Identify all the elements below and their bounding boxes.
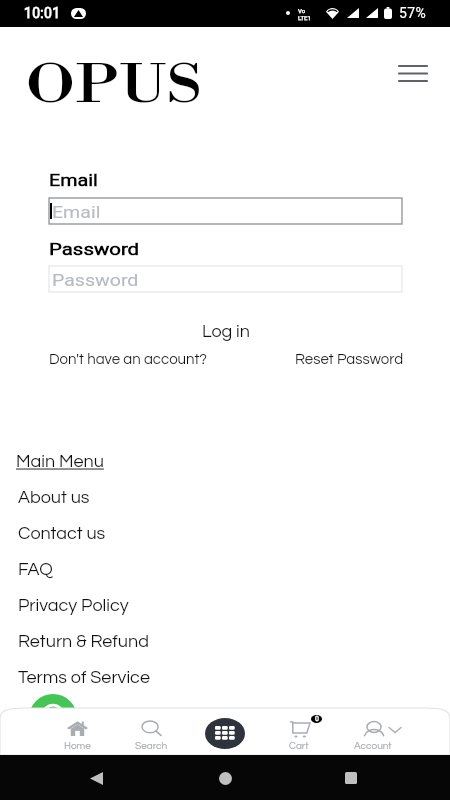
button[interactable]: Don't have an account?	[49, 352, 207, 367]
button[interactable]: Terms of Service	[18, 668, 150, 687]
button[interactable]: Search	[114, 708, 188, 755]
staticText: Reset Password	[295, 352, 404, 367]
button[interactable]: Main Menu	[16, 452, 104, 471]
button[interactable]: Contact us	[18, 524, 106, 543]
button[interactable]: FAQ	[18, 560, 53, 579]
staticText: Password	[49, 239, 140, 259]
button[interactable]: Home	[40, 708, 114, 755]
staticText: LTE1	[298, 14, 311, 21]
button[interactable]: Log in	[49, 320, 402, 342]
button[interactable]: Home	[215, 768, 235, 788]
staticText: Vo	[298, 7, 306, 14]
staticText: Log in	[202, 322, 250, 341]
staticText: Account	[354, 741, 392, 751]
staticText: 10:01	[24, 5, 61, 21]
button[interactable]: WhatsApp	[29, 694, 77, 742]
staticText: Home	[64, 741, 91, 751]
button[interactable]: Reset Password	[252, 352, 404, 367]
staticText: 57%	[399, 5, 427, 21]
button[interactable]: Back	[86, 768, 106, 788]
staticText: 0	[315, 715, 319, 723]
button[interactable]: Password	[49, 266, 402, 292]
staticText: Email	[49, 170, 99, 190]
button[interactable]: Menu	[391, 52, 435, 96]
button[interactable]: Apps	[188, 708, 262, 755]
button[interactable]: Privacy Policy	[18, 596, 129, 615]
staticText: Cart	[289, 741, 309, 751]
button[interactable]: Recents	[341, 768, 361, 788]
button[interactable]: Return & Refund	[18, 632, 149, 651]
button[interactable]: Account	[336, 708, 410, 755]
button[interactable]: 0	[262, 708, 336, 755]
button[interactable]: Email	[49, 198, 402, 224]
staticText: OPUS	[26, 54, 204, 119]
staticText: Search	[135, 741, 168, 751]
staticText: Password	[52, 270, 139, 290]
button[interactable]: About us	[18, 488, 90, 507]
staticText: Email	[52, 202, 101, 222]
